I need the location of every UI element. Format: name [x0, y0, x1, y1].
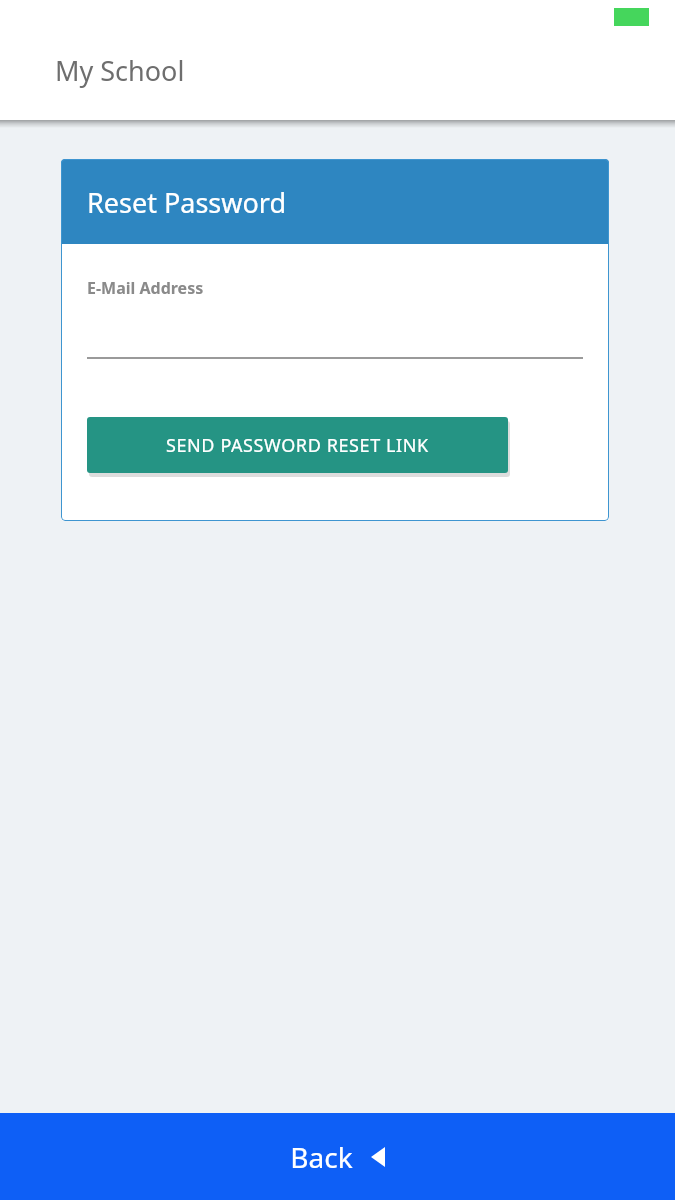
staticText: SEND PASSWORD RESET LINK — [166, 433, 429, 458]
button[interactable]: Back — [0, 1113, 675, 1200]
staticText: Back — [290, 1138, 353, 1176]
other: Back — [371, 1147, 385, 1167]
staticText: E-Mail Address — [87, 277, 204, 299]
staticText: Reset Password — [87, 184, 287, 221]
button[interactable]: SEND PASSWORD RESET LINK — [87, 417, 508, 473]
staticText: My School — [55, 52, 185, 89]
